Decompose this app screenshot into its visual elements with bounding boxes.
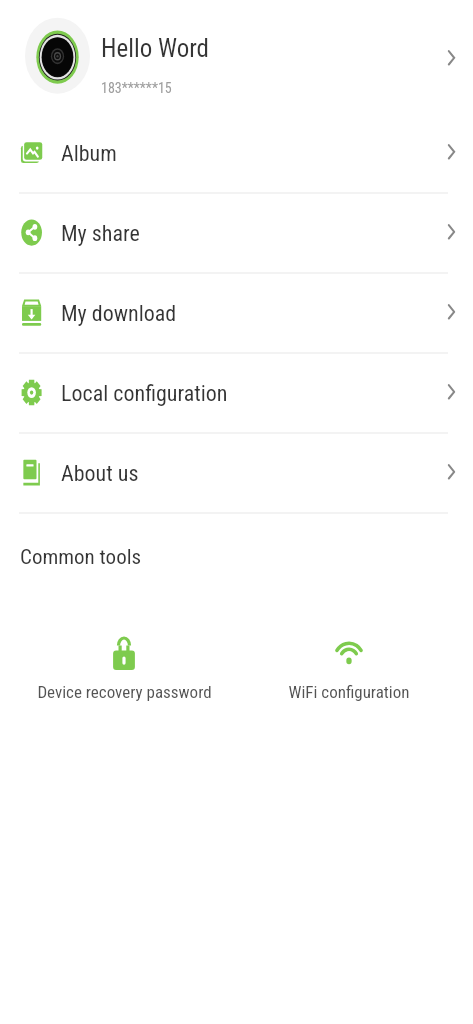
staticText: About us [61, 461, 139, 487]
staticText: My share [61, 221, 140, 247]
button[interactable]: About us [0, 434, 473, 512]
staticText: WiFi configuration [288, 682, 410, 702]
button[interactable]: WiFi configuration [259, 629, 439, 709]
button[interactable]: Local configuration [0, 354, 473, 432]
staticText: Device recovery password [37, 682, 212, 702]
staticText: 183******15 [101, 80, 172, 96]
button[interactable]: Album [0, 114, 473, 192]
staticText: Common tools [20, 545, 142, 570]
staticText: My download [61, 301, 177, 327]
button[interactable]: Device recovery password [34, 629, 214, 709]
staticText: Album [61, 141, 117, 167]
staticText: Hello Word [101, 34, 209, 63]
staticText: Local configuration [61, 381, 228, 407]
button[interactable]: Profile: Hello Word [0, 0, 473, 114]
button[interactable]: My download [0, 274, 473, 352]
button[interactable]: My share [0, 194, 473, 272]
